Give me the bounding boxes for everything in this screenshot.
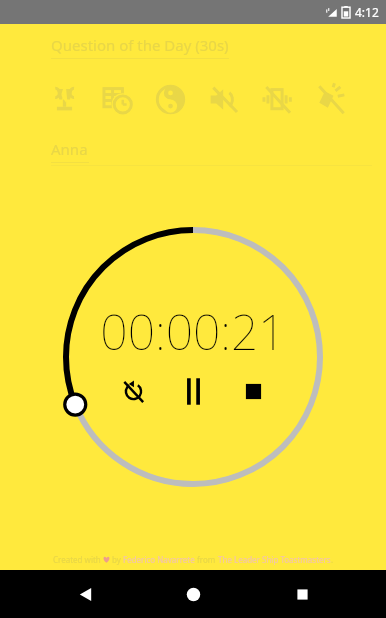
staticText: The Leader Ship Toastmasters bbox=[218, 554, 331, 565]
button[interactable]: Broken trophy bbox=[42, 77, 86, 121]
button[interactable]: Federico Navarrete bbox=[123, 554, 195, 565]
button[interactable]: Anna bbox=[51, 139, 89, 163]
button[interactable]: Stop bbox=[232, 370, 274, 412]
button[interactable]: Vibration off bbox=[255, 77, 299, 121]
staticText: 00:00:21 bbox=[100, 299, 286, 364]
staticText: from bbox=[195, 554, 218, 565]
staticText: Question of the Day (30s) bbox=[51, 35, 229, 55]
button[interactable]: Repeat off bbox=[112, 370, 154, 412]
button[interactable]: The Leader Ship Toastmasters bbox=[218, 554, 331, 565]
button[interactable]: Home bbox=[169, 570, 217, 618]
button[interactable]: Mute sound bbox=[202, 77, 246, 121]
button[interactable]: Recents bbox=[278, 570, 326, 618]
staticText: Created with bbox=[53, 554, 103, 565]
button[interactable]: Agenda timer bbox=[95, 77, 139, 121]
button[interactable]: Flash off bbox=[308, 77, 352, 121]
button[interactable]: Pause bbox=[172, 370, 214, 412]
button[interactable]: Yin yang bbox=[148, 77, 192, 121]
staticText: Anna bbox=[51, 139, 88, 159]
staticText: by bbox=[110, 554, 123, 565]
button[interactable]: Back bbox=[61, 570, 109, 618]
staticText: Federico Navarrete bbox=[123, 554, 195, 565]
button[interactable]: Question of the Day (30s) bbox=[51, 35, 229, 59]
staticText: . bbox=[331, 554, 334, 565]
staticText: 4:12 bbox=[355, 4, 379, 20]
